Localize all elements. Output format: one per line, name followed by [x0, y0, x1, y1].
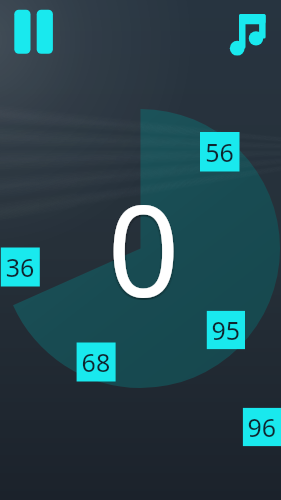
button[interactable]: Music	[221, 4, 273, 56]
button[interactable]: Pause	[8, 4, 60, 60]
